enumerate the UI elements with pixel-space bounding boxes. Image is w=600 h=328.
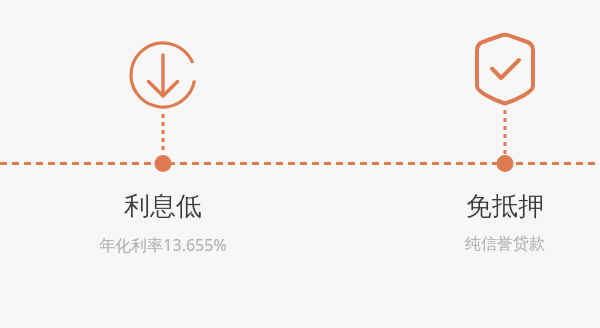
- button[interactable]: 免抵押 纯信誉贷款: [395, 190, 600, 254]
- staticText: 免抵押: [466, 190, 544, 223]
- staticText: 年化利率13.655%: [99, 234, 227, 256]
- button[interactable]: 利息低 年化利率13.655%: [53, 190, 273, 256]
- staticText: 利息低: [124, 190, 202, 223]
- staticText: 纯信誉贷款: [465, 234, 545, 254]
